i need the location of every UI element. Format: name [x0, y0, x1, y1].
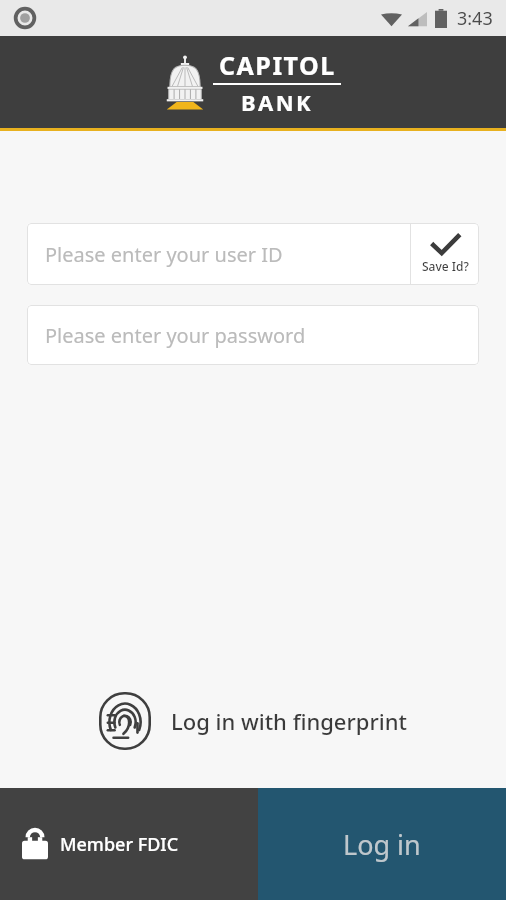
button[interactable]: Please enter your password [27, 305, 479, 365]
staticText: Please enter your password [45, 322, 306, 349]
staticText: Log in [343, 826, 421, 863]
staticText: Member FDIC [60, 832, 179, 857]
staticText: CAPITOL [219, 48, 336, 82]
button[interactable]: Save Id [411, 223, 479, 285]
staticText: BANK [241, 87, 313, 117]
staticText: 3:43 [457, 6, 493, 31]
button[interactable]: Log in [258, 788, 506, 900]
button[interactable]: Log in with fingerprint [0, 692, 506, 750]
button[interactable]: Member FDIC [22, 828, 179, 860]
button[interactable]: Please enter your user ID [27, 223, 410, 285]
staticText: Please enter your user ID [45, 241, 283, 268]
staticText: Log in with fingerprint [171, 706, 407, 736]
staticText: Save Id? [422, 258, 469, 274]
